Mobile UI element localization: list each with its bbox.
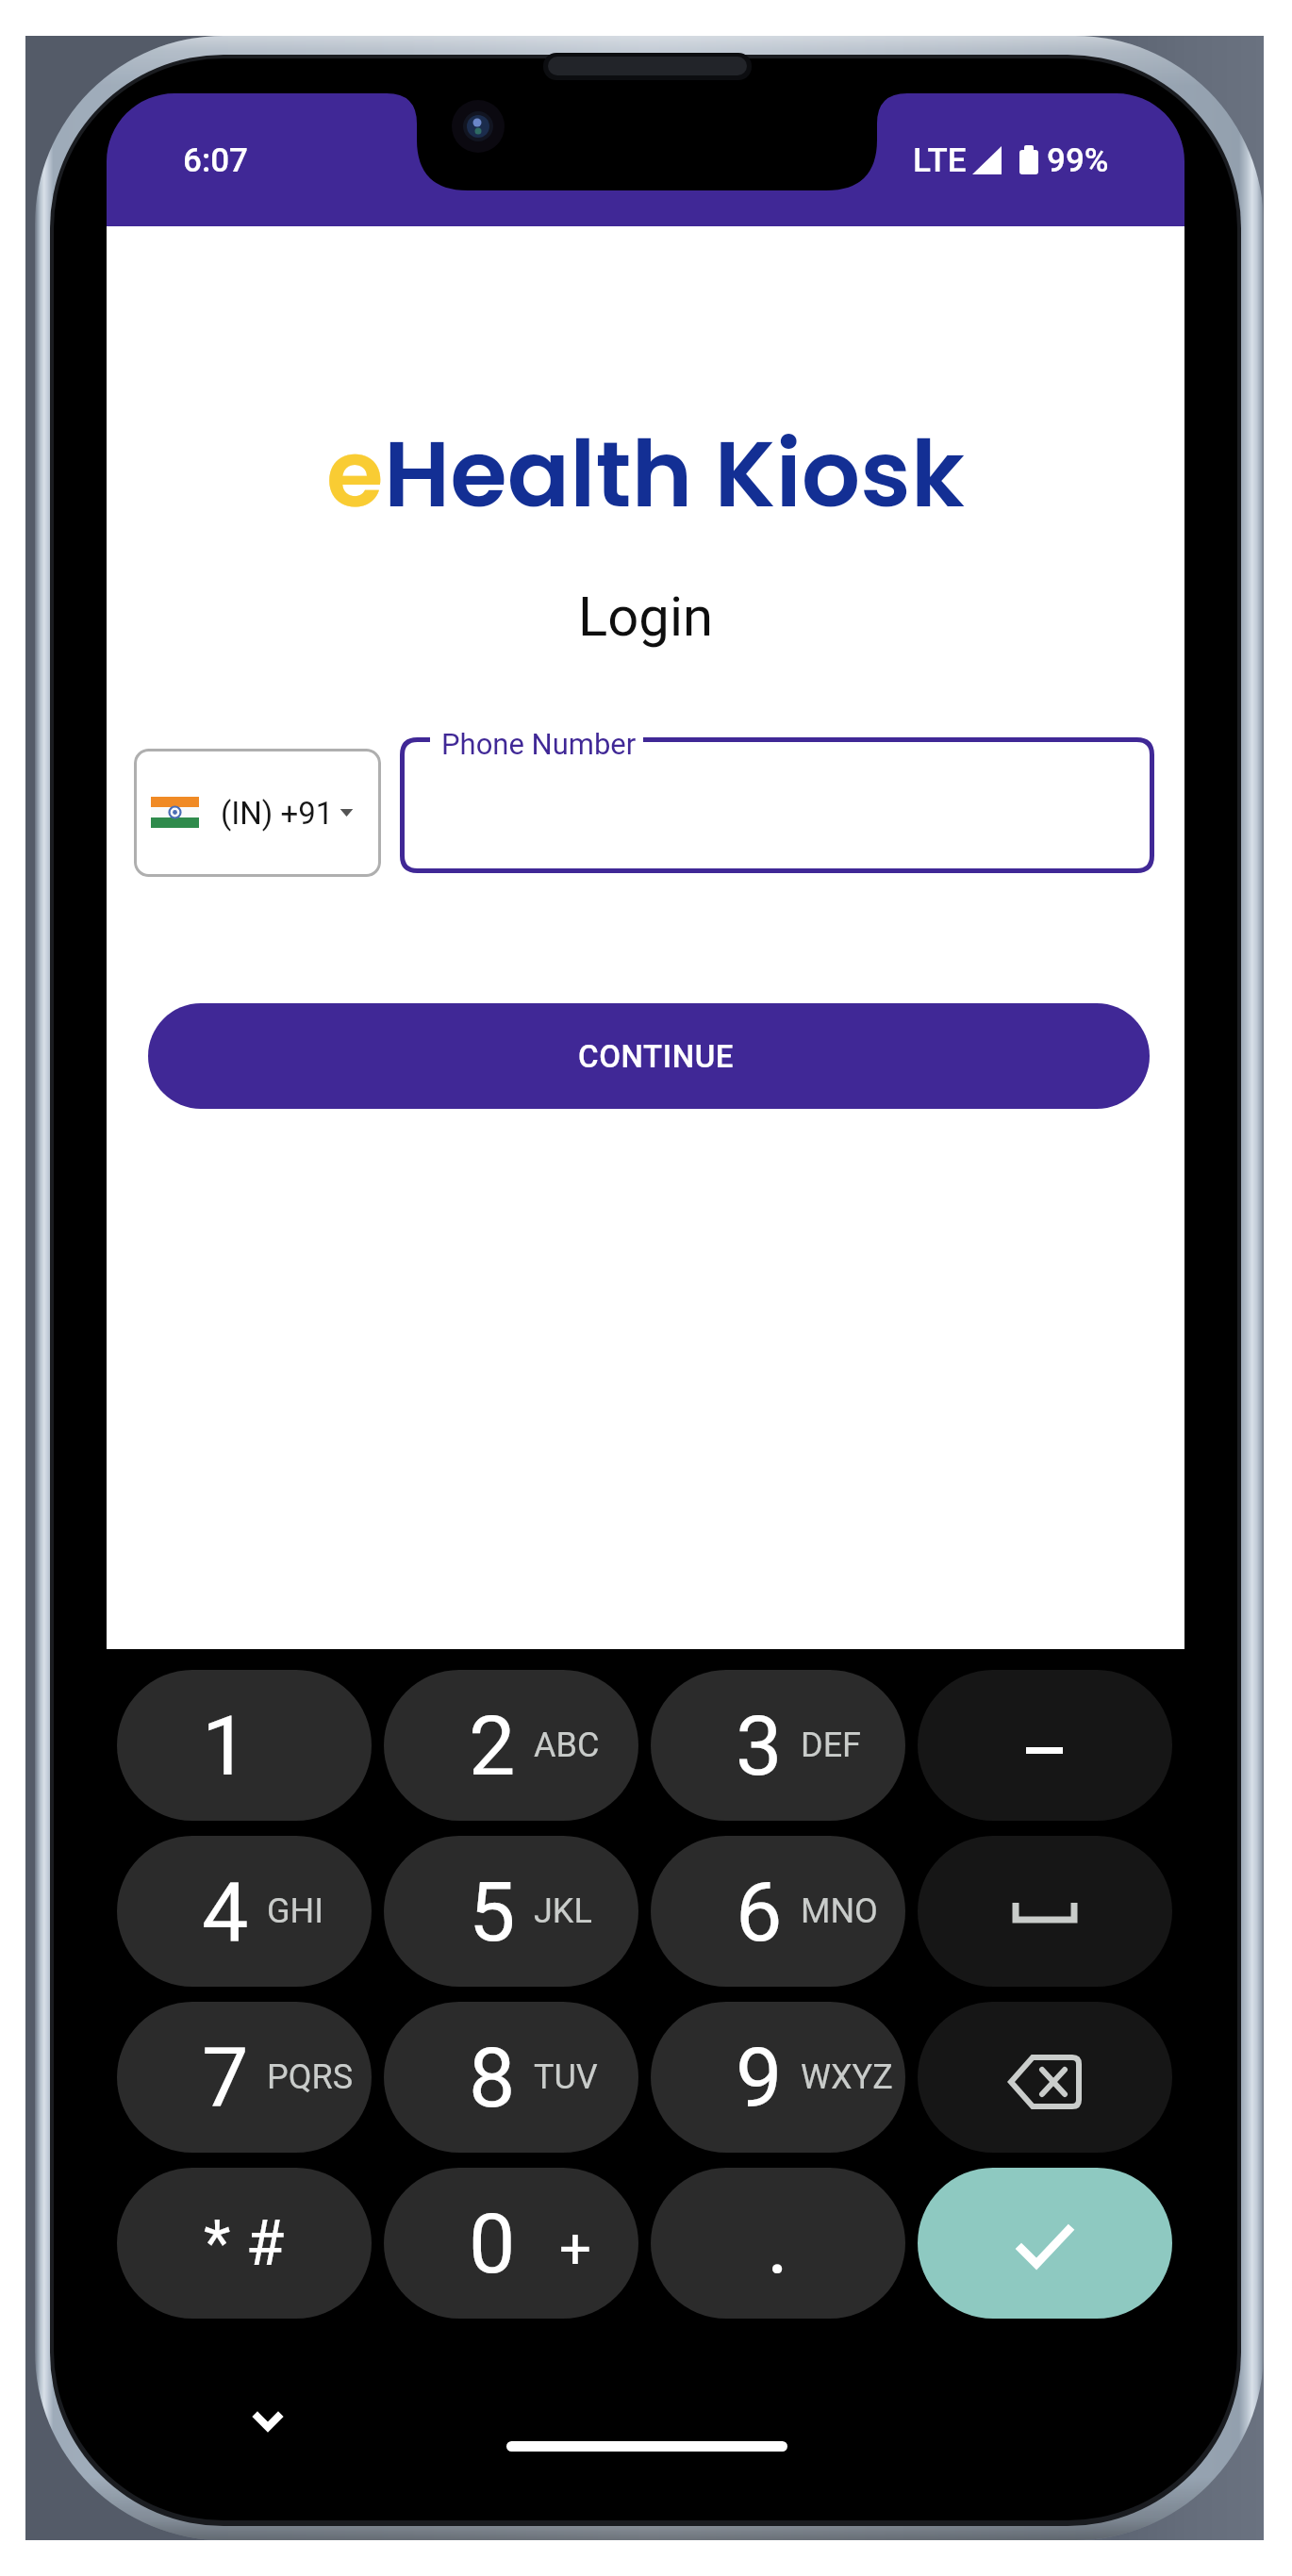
button[interactable]: .	[651, 2168, 905, 2319]
button[interactable]: Dash	[918, 1670, 1172, 1821]
button[interactable]: Hide keyboard	[234, 2387, 302, 2455]
staticText: 5	[469, 1863, 516, 1960]
staticText: GHI	[267, 1891, 323, 1931]
button[interactable]: 3	[651, 1670, 905, 1821]
button[interactable]: 8	[384, 2002, 638, 2153]
staticText: 8	[469, 2029, 516, 2126]
button[interactable]: 7	[117, 2002, 372, 2153]
staticText: * #	[204, 2207, 285, 2280]
staticText: 6:07	[183, 141, 248, 180]
staticText: .	[767, 2195, 789, 2292]
staticText: Phone Number	[441, 727, 637, 761]
staticText: 4	[202, 1863, 249, 1960]
button[interactable]: CONTINUE	[148, 1003, 1150, 1109]
button[interactable]: 2	[384, 1670, 638, 1821]
staticText: e	[326, 409, 384, 522]
staticText: (IN) +91	[221, 795, 334, 832]
staticText: 2	[469, 1697, 516, 1794]
staticText: 7	[202, 2029, 249, 2126]
staticText: DEF	[801, 1726, 861, 1765]
staticText: 6	[736, 1863, 783, 1960]
button[interactable]: Backspace	[918, 2002, 1172, 2153]
button[interactable]: 9	[651, 2002, 905, 2153]
button[interactable]: 0	[384, 2168, 638, 2319]
button[interactable]: 5	[384, 1836, 638, 1987]
button[interactable]: (IN) +91	[134, 749, 381, 877]
button[interactable]: Enter	[918, 2168, 1172, 2319]
staticText: TUV	[534, 2057, 598, 2097]
staticText: 0	[469, 2195, 516, 2292]
staticText: PQRS	[267, 2057, 354, 2097]
staticText: 99%	[1047, 141, 1109, 180]
staticText: +	[559, 2215, 592, 2281]
staticText: 9	[736, 2029, 783, 2126]
staticText: Health Kiosk	[384, 409, 965, 522]
staticText: JKL	[534, 1891, 592, 1931]
staticText: 1	[202, 1697, 249, 1794]
staticText: WXYZ	[801, 2057, 893, 2097]
button[interactable]: Phone Number	[400, 737, 1154, 873]
button[interactable]: * #	[117, 2168, 372, 2319]
button[interactable]: 4	[117, 1836, 372, 1987]
button[interactable]: Space	[918, 1836, 1172, 1987]
staticText: ABC	[534, 1726, 600, 1765]
button[interactable]: 6	[651, 1836, 905, 1987]
staticText: MNO	[801, 1891, 878, 1931]
staticText: Login	[107, 585, 1184, 662]
staticText: CONTINUE	[578, 1038, 735, 1075]
staticText: LTE	[913, 141, 967, 180]
staticText: 3	[736, 1697, 783, 1794]
button[interactable]: 1	[117, 1670, 372, 1821]
